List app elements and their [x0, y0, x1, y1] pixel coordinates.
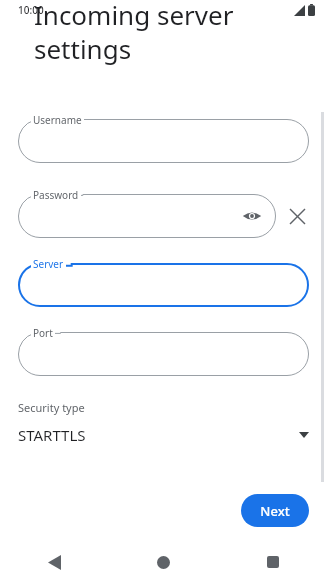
button[interactable]: Back [0, 542, 109, 582]
button[interactable]: Security type [18, 400, 309, 445]
button[interactable]: Home [109, 542, 218, 582]
button[interactable]: Next [241, 494, 309, 527]
button[interactable]: Clear [283, 202, 311, 230]
staticText: Port [33, 326, 53, 340]
staticText: Server [33, 257, 64, 271]
staticText: Incoming server settings [34, 0, 234, 66]
button[interactable]: Port [18, 332, 309, 376]
staticText: Security type [18, 400, 85, 415]
button[interactable]: Server [18, 263, 309, 307]
staticText: STARTTLS [18, 425, 86, 445]
staticText: 10:00 [18, 3, 44, 17]
button[interactable]: Username [18, 119, 309, 163]
button[interactable]: Recent apps [218, 542, 327, 582]
staticText: Password [33, 188, 79, 202]
button[interactable]: Password [18, 194, 276, 238]
button[interactable]: Show password [240, 204, 264, 228]
staticText: Next [260, 502, 290, 520]
staticText: Username [33, 113, 82, 127]
